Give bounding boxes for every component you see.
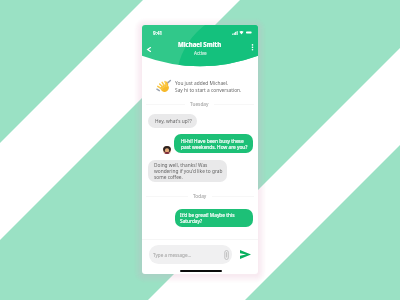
staticText: Doing well, thanks! Was wondering if you…	[154, 162, 223, 180]
staticText: Say hi to start a conversation.	[175, 87, 242, 94]
button[interactable]: Hi-hi! Have been busy these past weekend…	[174, 134, 253, 153]
button[interactable]: More options	[246, 42, 258, 54]
staticText: You just added Michael.	[175, 80, 229, 87]
staticText: Hi-hi! Have been busy these past weekend…	[181, 138, 248, 150]
staticText: Today	[193, 193, 207, 200]
staticText: It'd be great! Maybe this Saturday?	[180, 212, 235, 224]
button[interactable]: Doing well, thanks! Was wondering if you…	[148, 160, 227, 182]
button[interactable]: It'd be great! Maybe this Saturday?	[175, 209, 253, 227]
staticText: Tuesday	[190, 101, 209, 108]
staticText: Active	[194, 50, 207, 56]
staticText: 9:41	[153, 30, 163, 36]
button[interactable]: Send	[237, 246, 254, 263]
staticText: Hey, what's up??	[155, 118, 192, 125]
staticText: Type a message...	[153, 252, 192, 258]
button[interactable]: Type a message...	[149, 245, 232, 264]
button[interactable]: Hey, what's up??	[148, 114, 197, 128]
button[interactable]: Back	[143, 43, 155, 55]
staticText: Michael Smith	[178, 40, 222, 48]
